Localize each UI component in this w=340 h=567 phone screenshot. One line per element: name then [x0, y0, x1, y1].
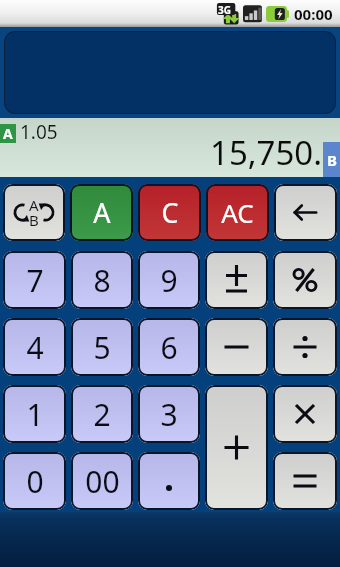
staticText: A — [93, 194, 111, 231]
button[interactable]: Multiply — [273, 385, 337, 443]
button[interactable]: Plus minus — [205, 251, 268, 309]
staticText: 6 — [160, 327, 178, 368]
button[interactable]: 3 — [138, 385, 200, 443]
button[interactable]: Decimal point — [138, 452, 200, 510]
staticText: 3G — [218, 3, 231, 17]
staticText: 00:00 — [294, 4, 333, 24]
staticText: 1 — [26, 394, 44, 435]
staticText: 4 — [26, 327, 44, 368]
staticText: C — [161, 194, 179, 231]
staticText: 1.05 — [20, 119, 58, 145]
button[interactable]: Equals — [273, 452, 337, 510]
button[interactable]: 5 — [71, 318, 133, 376]
staticText: B — [327, 150, 337, 170]
button[interactable]: Minus — [205, 318, 268, 376]
staticText: 2 — [93, 394, 111, 435]
staticText: 7 — [26, 260, 44, 301]
button[interactable]: 4 — [3, 318, 66, 376]
button[interactable]: 8 — [71, 251, 133, 309]
button[interactable]: Percent — [273, 251, 337, 309]
button[interactable]: Plus — [205, 385, 268, 510]
staticText: B — [29, 210, 39, 230]
staticText: 5 — [93, 327, 111, 368]
staticText: 0 — [26, 461, 44, 502]
button[interactable]: 2 — [71, 385, 133, 443]
button[interactable]: 0 — [3, 452, 66, 510]
button[interactable]: 00 — [71, 452, 133, 510]
staticText: AC — [221, 195, 254, 230]
button[interactable]: Divide — [273, 318, 337, 376]
staticText: 15,750. — [210, 130, 323, 175]
staticText: A — [29, 195, 39, 215]
button[interactable]: A — [70, 184, 133, 241]
button[interactable]: AC — [206, 184, 269, 241]
button[interactable]: 7 — [3, 251, 66, 309]
button[interactable]: C — [138, 184, 201, 241]
button[interactable]: 1 — [3, 385, 66, 443]
staticText: A — [3, 124, 13, 143]
button[interactable]: Backspace — [274, 184, 337, 241]
button[interactable]: Swap A and B — [3, 184, 65, 241]
staticText: 9 — [160, 260, 178, 301]
staticText: 00 — [85, 461, 120, 502]
staticText: 8 — [93, 260, 111, 301]
button[interactable]: 9 — [138, 251, 200, 309]
staticText: 3 — [160, 394, 178, 435]
button[interactable]: 6 — [138, 318, 200, 376]
